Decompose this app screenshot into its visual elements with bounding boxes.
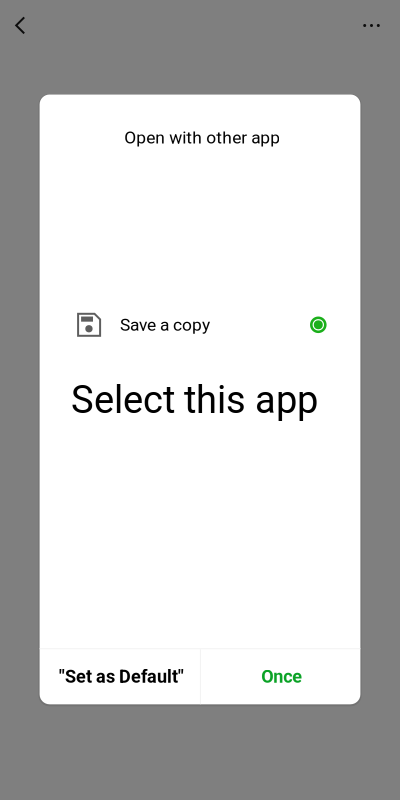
button[interactable]: Once [202, 649, 362, 704]
staticText: Save a copy [120, 315, 210, 335]
button[interactable]: More options [349, 3, 393, 47]
staticText: Open with other app [124, 127, 280, 148]
button[interactable]: Back [0, 3, 42, 47]
staticText: Select this app [71, 378, 318, 422]
button[interactable]: Save a copy [77, 312, 327, 338]
staticText: Once [261, 666, 302, 687]
button[interactable]: "Set as Default" [41, 649, 201, 704]
staticText: "Set as Default" [59, 666, 184, 687]
